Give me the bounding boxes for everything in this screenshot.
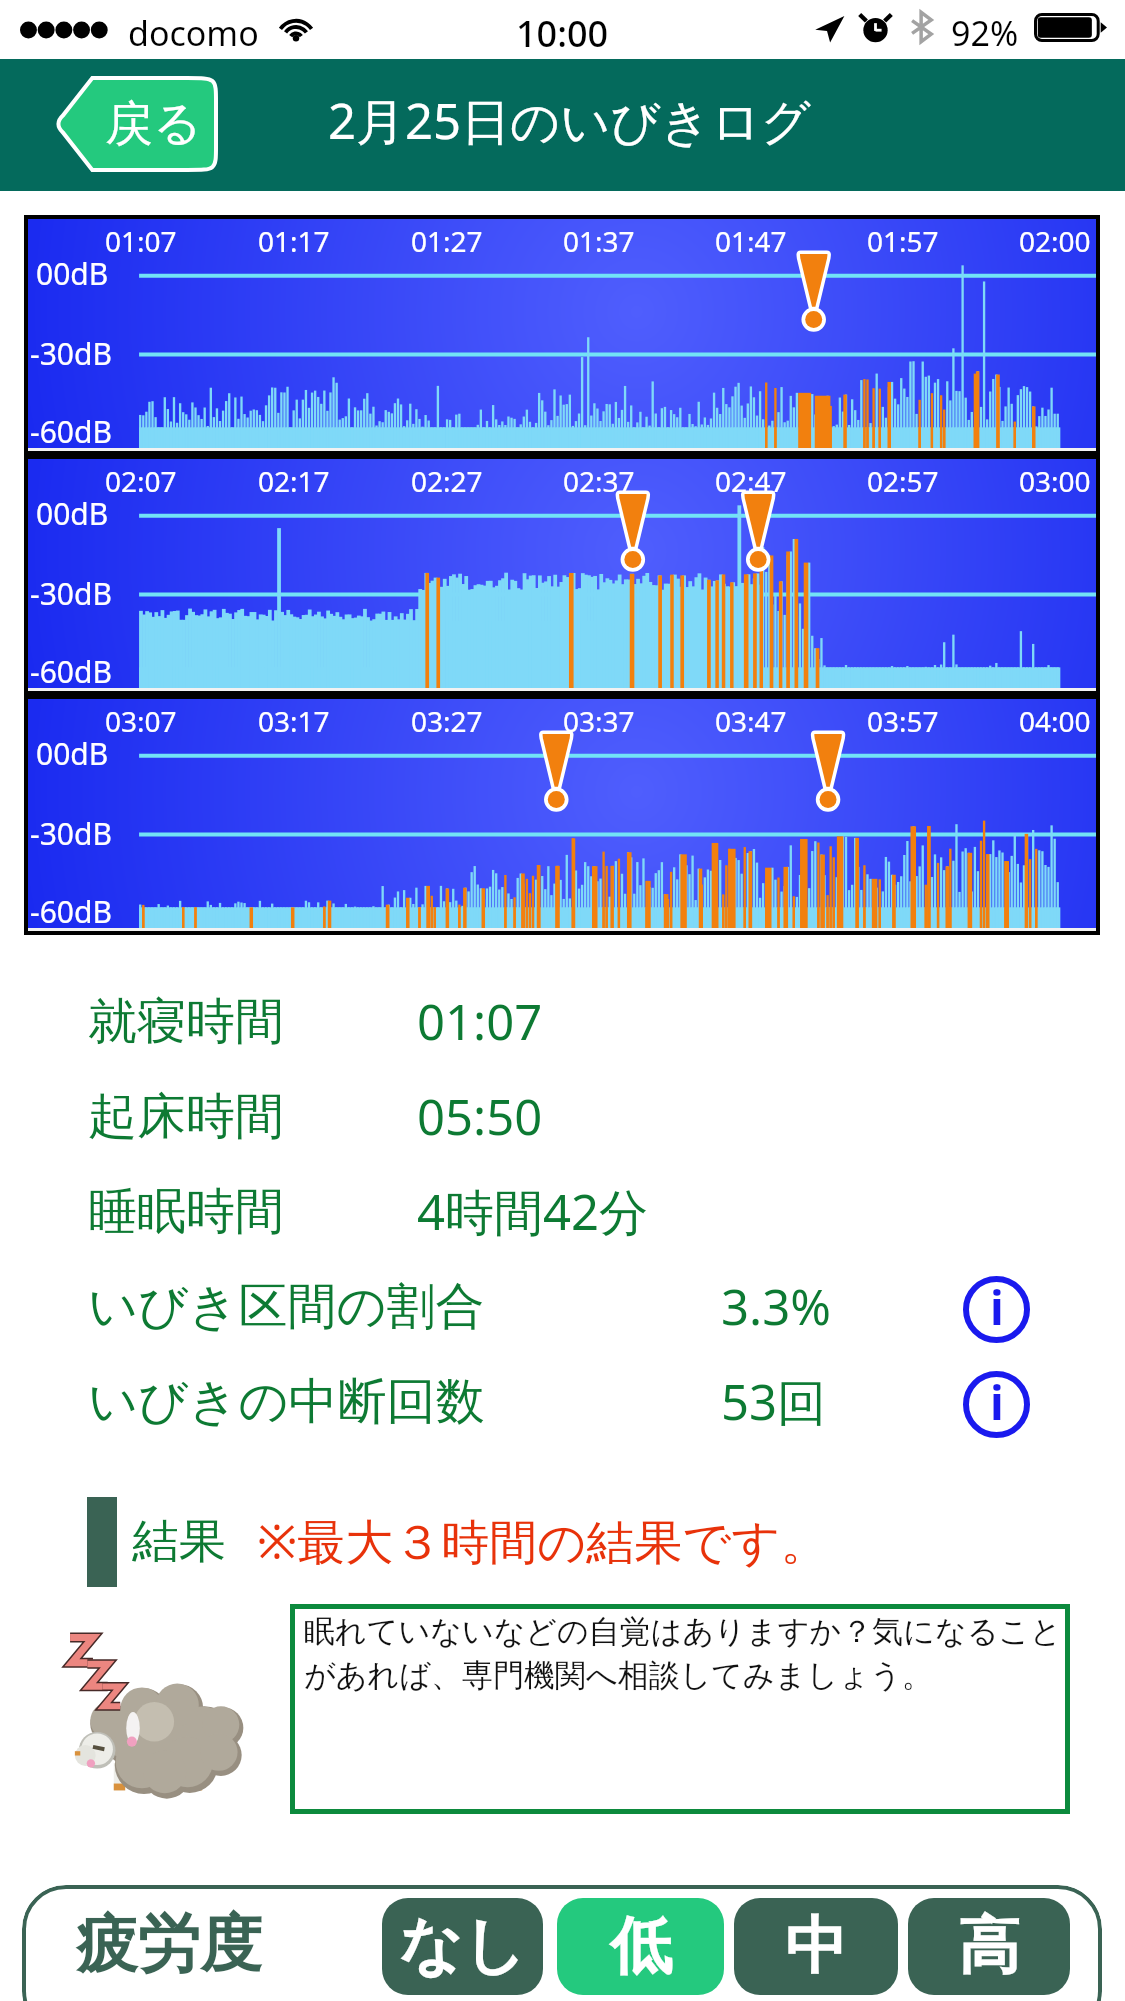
staticText: 01:47 — [715, 222, 787, 260]
staticText: 03:27 — [411, 702, 483, 740]
staticText: 中 — [785, 1907, 847, 1985]
staticText: 01:57 — [867, 222, 939, 260]
staticText: 03:57 — [867, 702, 939, 740]
staticText: 3.3% — [721, 1273, 831, 1340]
staticText: 03:17 — [258, 702, 330, 740]
staticText: -30dB — [30, 813, 112, 854]
staticText: 02:57 — [867, 462, 939, 500]
button[interactable]: 戻る — [52, 76, 218, 172]
staticText: いびき区間の割合 — [88, 1276, 485, 1338]
button[interactable]: 詳細情報 — [962, 1275, 1031, 1344]
staticText: 00dB — [36, 733, 109, 774]
staticText: 02:07 — [105, 462, 177, 500]
staticText: 01:07 — [417, 988, 543, 1055]
staticText: 02:00 — [1019, 222, 1091, 260]
staticText: 01:07 — [105, 222, 177, 260]
staticText: ※最大３時間の結果です。 — [257, 1508, 829, 1574]
staticText: なし — [399, 1907, 526, 1985]
staticText: 01:37 — [563, 222, 635, 260]
staticText: 03:37 — [563, 702, 635, 740]
staticText: 睡眠時間 — [88, 1181, 284, 1243]
staticText: 01:17 — [258, 222, 330, 260]
staticText: -30dB — [30, 573, 112, 614]
staticText: 10:00 — [516, 9, 609, 58]
staticText: いびきの中断回数 — [88, 1371, 485, 1433]
staticText: 02:47 — [715, 462, 787, 500]
staticText: 00dB — [36, 253, 109, 294]
staticText: 02:37 — [563, 462, 635, 500]
staticText: 02:27 — [411, 462, 483, 500]
staticText: 結果 — [132, 1512, 226, 1571]
staticText: 03:07 — [105, 702, 177, 740]
staticText: 2月25日のいびきログ — [328, 87, 811, 154]
staticText: -60dB — [30, 891, 112, 932]
staticText: i — [990, 1371, 1004, 1434]
staticText: 01:27 — [411, 222, 483, 260]
staticText: 05:50 — [417, 1083, 543, 1150]
staticText: 02:17 — [258, 462, 330, 500]
staticText: -60dB — [30, 411, 112, 452]
staticText: i — [990, 1276, 1004, 1339]
staticText: 起床時間 — [88, 1086, 284, 1148]
staticText: 4時間42分 — [417, 1178, 649, 1245]
button[interactable]: なし — [382, 1898, 543, 1995]
staticText: -60dB — [30, 651, 112, 692]
staticText: 53回 — [721, 1368, 827, 1435]
staticText: 眠れていないなどの自覚はありますか？気になること があれば、専門機関へ相談してみ… — [304, 1612, 1074, 1695]
button[interactable]: 低 — [557, 1898, 724, 1995]
staticText: 高 — [958, 1907, 1020, 1985]
button[interactable]: 中 — [734, 1898, 898, 1995]
staticText: 04:00 — [1019, 702, 1091, 740]
staticText: 疲労度 — [76, 1905, 262, 1983]
staticText: 就寝時間 — [88, 991, 284, 1053]
staticText: 03:47 — [715, 702, 787, 740]
staticText: 00dB — [36, 493, 109, 534]
staticText: 92% — [951, 10, 1019, 56]
staticText: -30dB — [30, 333, 112, 374]
button[interactable]: 詳細情報 — [962, 1370, 1031, 1439]
staticText: 戻る — [105, 94, 203, 154]
staticText: docomo — [128, 10, 259, 56]
staticText: 低 — [610, 1907, 672, 1985]
staticText: 03:00 — [1019, 462, 1091, 500]
button[interactable]: 高 — [908, 1898, 1070, 1995]
